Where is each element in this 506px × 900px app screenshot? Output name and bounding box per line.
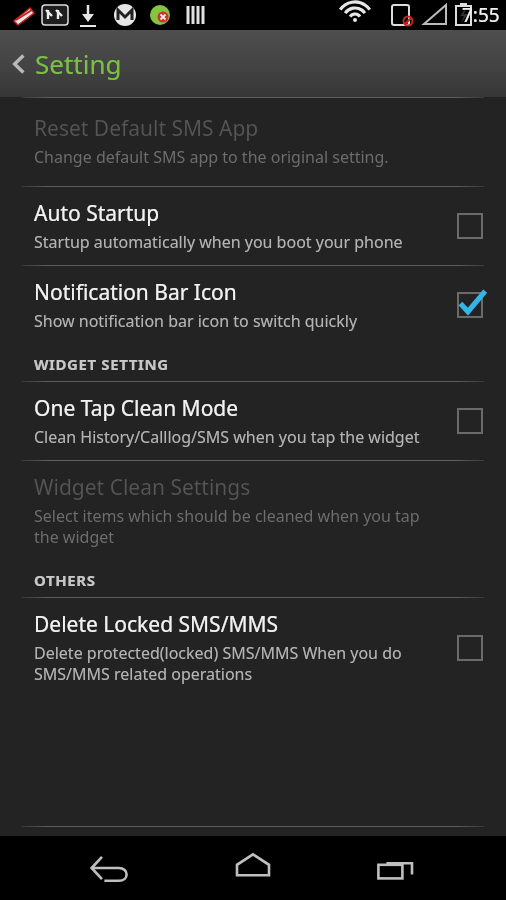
- button[interactable]: One Tap Clean Mode: [0, 382, 506, 460]
- staticText: Setting: [35, 46, 122, 81]
- button[interactable]: Back: [72, 836, 148, 900]
- staticText: Widget Clean Settings: [34, 473, 251, 502]
- button[interactable]: Recent apps: [358, 836, 434, 900]
- button[interactable]: Notification Bar Icon: [0, 266, 506, 342]
- button[interactable]: Reset Default SMS App: [0, 98, 506, 186]
- staticText: Show notification bar icon to switch qui…: [34, 310, 358, 332]
- staticText: WIDGET SETTING: [34, 354, 169, 374]
- staticText: Reset Default SMS App: [34, 114, 259, 143]
- button[interactable]: Delete Locked SMS/MMS: [0, 598, 506, 697]
- staticText: Change default SMS app to the original s…: [34, 146, 389, 168]
- staticText: Auto Startup: [34, 199, 160, 228]
- button[interactable]: Setting: [0, 30, 506, 97]
- staticText: 7:55: [462, 2, 500, 28]
- button[interactable]: Widget Clean Settings: [0, 461, 506, 558]
- button[interactable]: Auto Startup: [0, 187, 506, 265]
- staticText: One Tap Clean Mode: [34, 394, 239, 423]
- staticText: OTHERS: [34, 570, 96, 590]
- staticText: Select items which should be cleaned whe…: [34, 505, 434, 548]
- staticText: Startup automatically when you boot your…: [34, 231, 403, 253]
- staticText: Clean History/Calllog/SMS when you tap t…: [34, 426, 420, 448]
- staticText: Delete protected(locked) SMS/MMS When yo…: [34, 642, 434, 685]
- staticText: Notification Bar Icon: [34, 278, 237, 307]
- staticText: Delete Locked SMS/MMS: [34, 610, 279, 639]
- button[interactable]: Home: [215, 836, 291, 900]
